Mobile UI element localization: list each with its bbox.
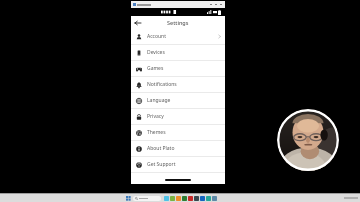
button[interactable]: Devices bbox=[131, 45, 225, 60]
button[interactable]: App bbox=[170, 196, 175, 201]
button[interactable]: Games bbox=[131, 61, 225, 76]
staticText: Notifications bbox=[147, 81, 177, 88]
button[interactable]: App bbox=[176, 196, 181, 201]
button[interactable]: Language bbox=[131, 93, 225, 108]
staticText: About Plato bbox=[147, 145, 175, 152]
button[interactable]: Start bbox=[126, 196, 131, 201]
button[interactable]: Back bbox=[133, 18, 143, 28]
button[interactable]: Get Support bbox=[131, 157, 225, 172]
button[interactable]: App bbox=[188, 196, 193, 201]
button[interactable]: App bbox=[212, 196, 217, 201]
button[interactable] bbox=[133, 196, 161, 201]
button[interactable]: Themes bbox=[131, 125, 225, 140]
button[interactable]: App bbox=[200, 196, 205, 201]
staticText: Account bbox=[147, 33, 167, 40]
button[interactable]: Notifications bbox=[131, 77, 225, 92]
button[interactable]: Account bbox=[131, 29, 225, 44]
staticText: Games bbox=[147, 65, 164, 72]
button[interactable]: App bbox=[206, 196, 211, 201]
staticText: Get Support bbox=[147, 161, 176, 168]
staticText: Language bbox=[147, 97, 171, 104]
button[interactable]: About Plato bbox=[131, 141, 225, 156]
staticText: Devices bbox=[147, 49, 165, 56]
button[interactable]: App bbox=[164, 196, 169, 201]
staticText: Settings bbox=[167, 19, 189, 26]
button[interactable]: Privacy bbox=[131, 109, 225, 124]
staticText: Themes bbox=[147, 129, 166, 136]
button[interactable]: App bbox=[194, 196, 199, 201]
button[interactable]: App bbox=[182, 196, 187, 201]
staticText: Privacy bbox=[147, 113, 164, 120]
